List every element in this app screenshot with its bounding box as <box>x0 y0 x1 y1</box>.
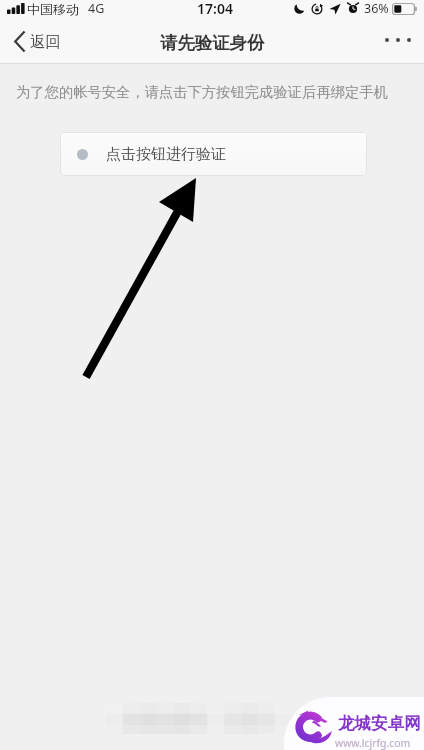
staticText: 17:04 <box>197 0 233 18</box>
staticText: 为了您的帐号安全，请点击下方按钮完成验证后再绑定手机 <box>16 83 388 101</box>
staticText: 36% <box>364 0 389 17</box>
staticText: 点击按钮进行验证 <box>106 145 226 164</box>
staticText: 返回 <box>30 32 61 52</box>
staticText: www.lcjrfg.com <box>335 736 411 750</box>
button[interactable]: More options <box>371 26 424 54</box>
staticText: 龙城安卓网 <box>338 713 421 734</box>
staticText: 4G <box>88 0 105 17</box>
button[interactable]: 返回 <box>0 25 75 58</box>
button[interactable]: 点击按钮进行验证 <box>60 132 367 176</box>
staticText: 请先验证身份 <box>160 32 265 54</box>
staticText: 中国移动 <box>27 1 79 17</box>
